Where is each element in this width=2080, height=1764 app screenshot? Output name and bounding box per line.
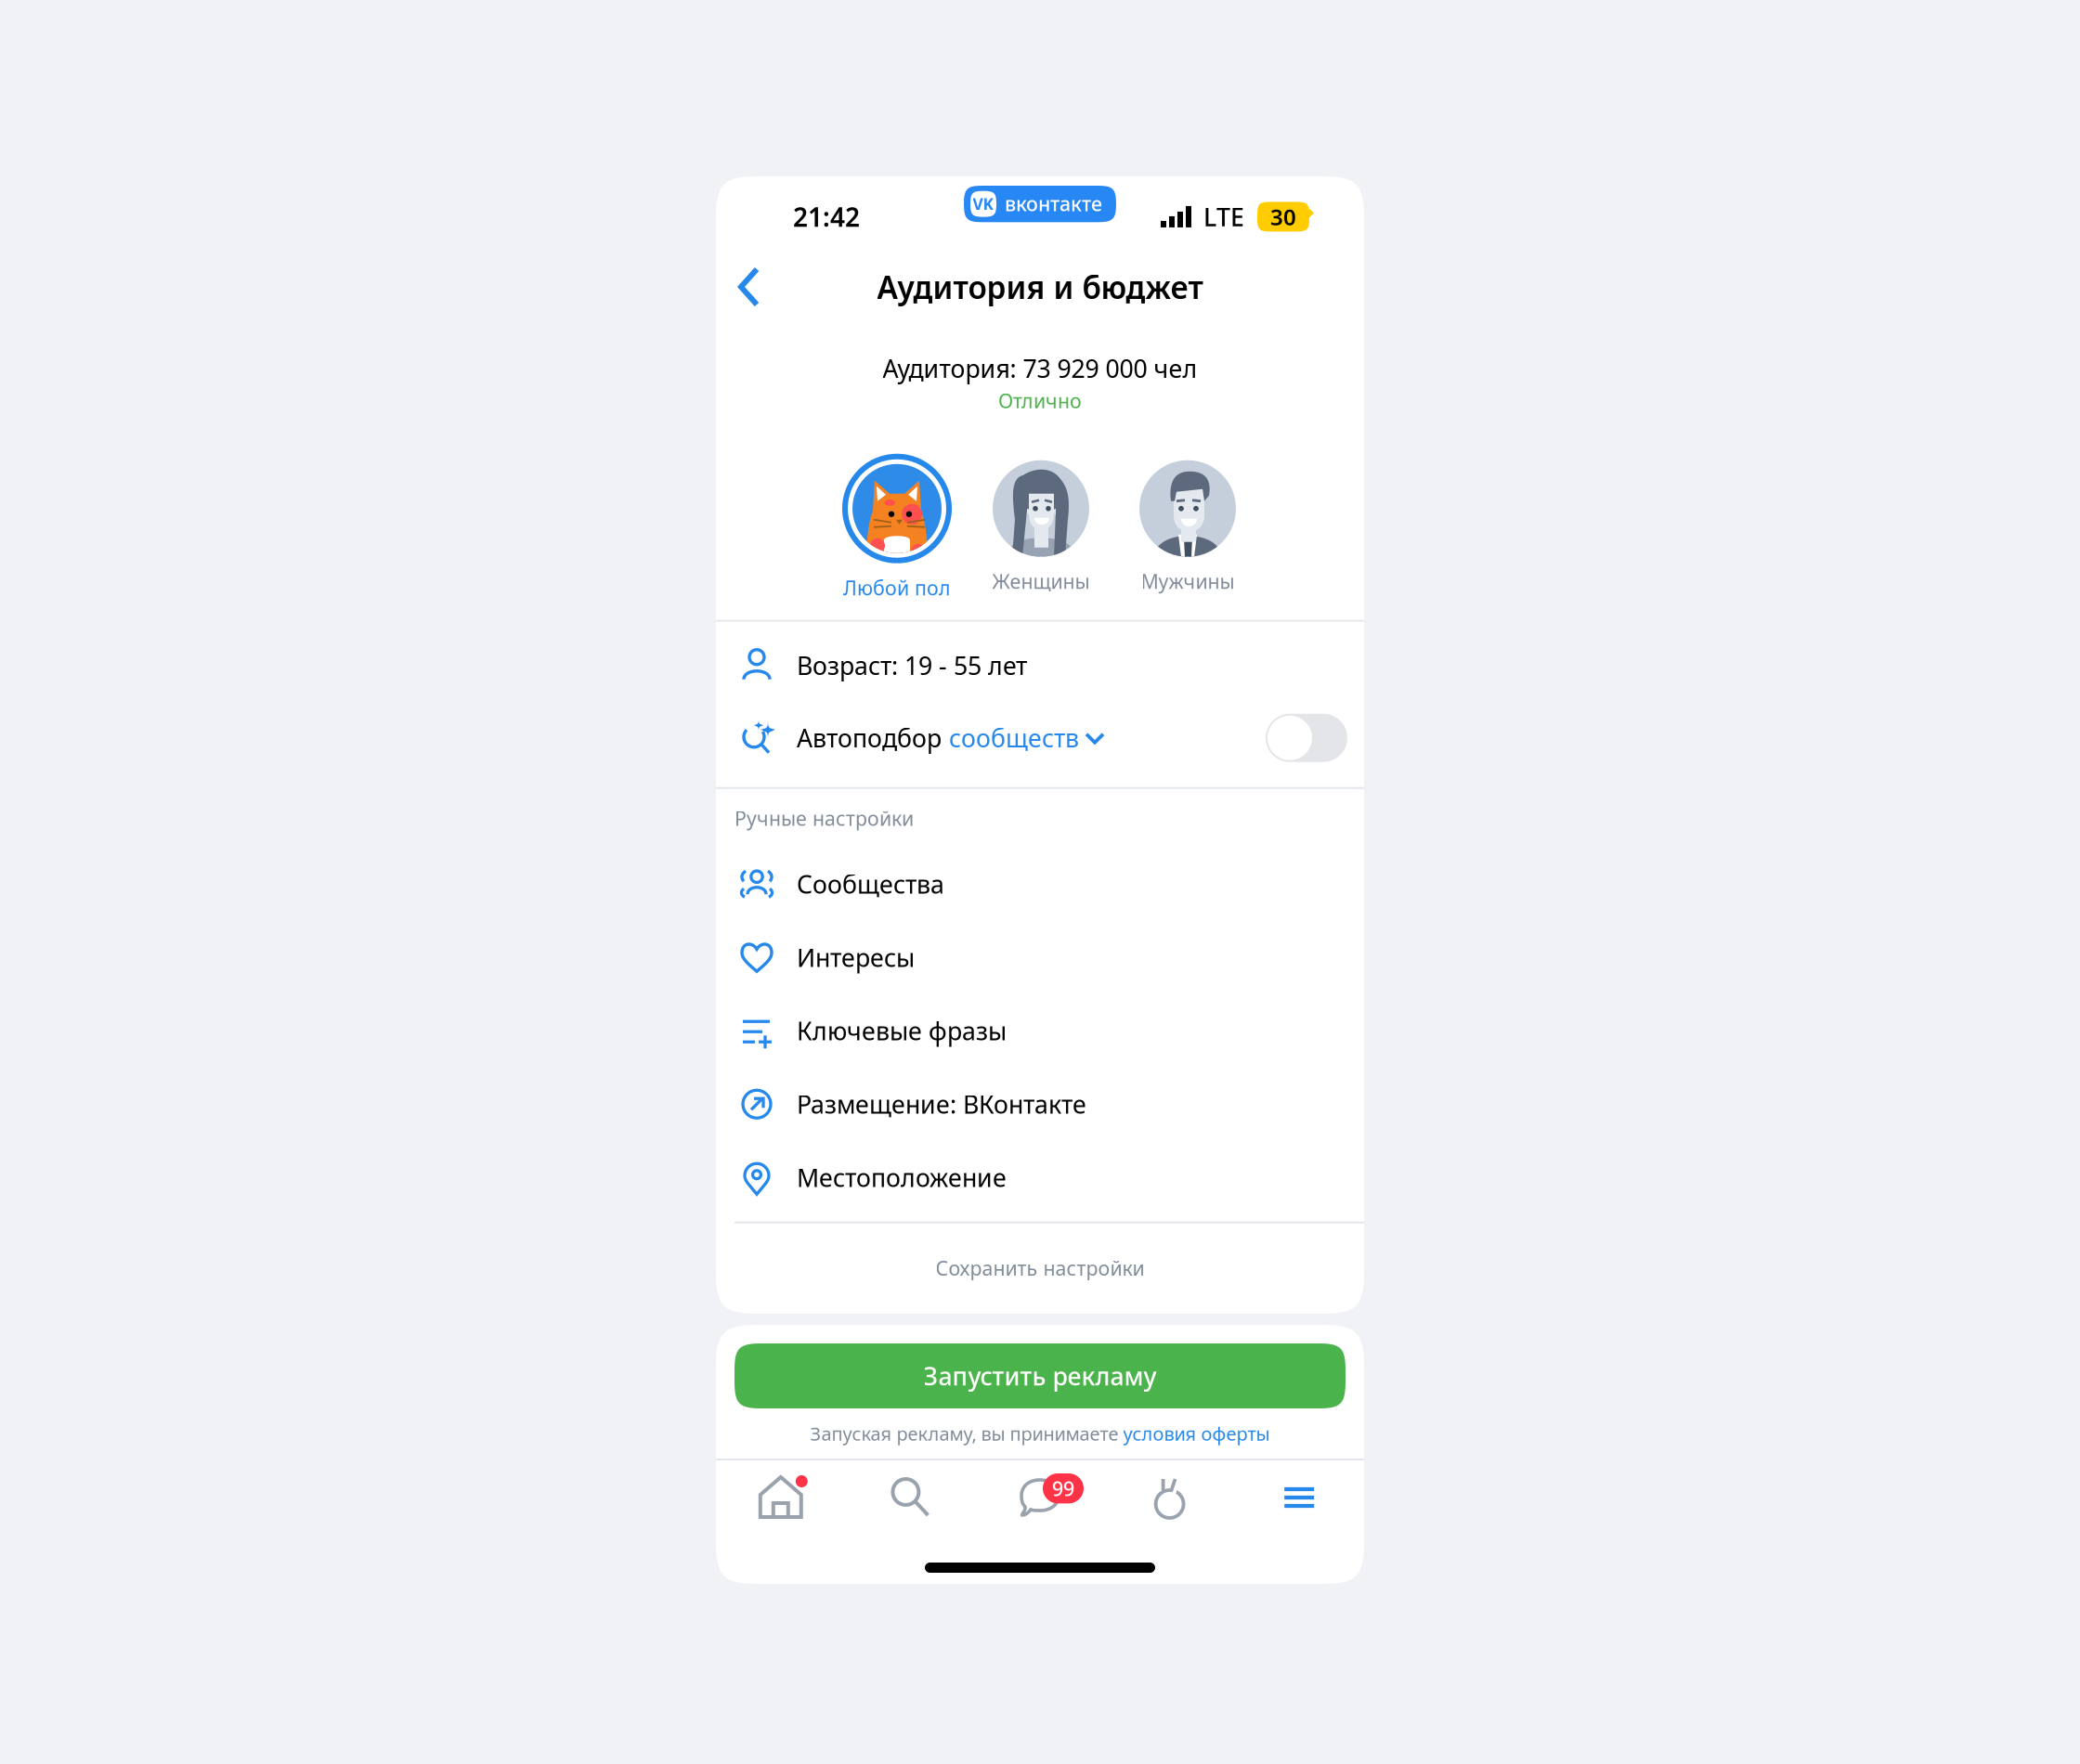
staticText: Женщины	[992, 568, 1090, 594]
button[interactable]: Сохранить настройки	[716, 1223, 1364, 1313]
button[interactable]: Любой пол	[818, 454, 976, 602]
staticText: 30	[1270, 202, 1296, 232]
staticText: Интересы	[797, 941, 915, 974]
staticText: Сохранить настройки	[936, 1255, 1144, 1281]
staticText: Отлично	[998, 388, 1082, 414]
button[interactable]: Клипы	[1105, 1460, 1234, 1535]
staticText: Размещение: ВКонтакте	[797, 1088, 1086, 1121]
button[interactable]: Главная	[716, 1460, 846, 1535]
button[interactable]: Интересы	[716, 921, 1364, 994]
staticText: Ключевые фразы	[797, 1014, 1007, 1047]
button[interactable]: Ключевые фразы	[716, 994, 1364, 1067]
button[interactable]: Сообщества	[716, 847, 1364, 921]
staticText: 99	[1052, 1475, 1074, 1502]
staticText: Сообщества	[797, 868, 944, 900]
staticText: Ручные настройки	[734, 805, 914, 831]
button[interactable]: Назад	[720, 258, 777, 316]
staticText: Аудитория: 73 929 000 чел	[883, 352, 1197, 385]
button[interactable]: Сообщения	[975, 1460, 1105, 1535]
staticText: вконтакте	[1005, 190, 1102, 217]
staticText: Аудитория и бюджет	[877, 266, 1203, 307]
staticText: сообществ	[949, 721, 1079, 754]
staticText: Автоподбор	[797, 721, 942, 754]
button[interactable]: Возраст: 19 - 55 лет	[716, 629, 1364, 702]
staticText: Возраст: 19 - 55 лет	[797, 649, 1027, 682]
staticText: LTE	[1203, 200, 1244, 233]
button[interactable]: Поиск	[846, 1460, 975, 1535]
staticText: условия оферты	[1123, 1421, 1270, 1446]
staticText: Запуская рекламу, вы принимаете	[810, 1421, 1123, 1446]
staticText: Запустить рекламу	[923, 1359, 1157, 1392]
staticText: Мужчины	[1141, 568, 1235, 594]
button[interactable]: Женщины	[976, 454, 1106, 602]
staticText: VK	[973, 193, 994, 215]
button[interactable]: Размещение: ВКонтакте	[716, 1067, 1364, 1141]
staticText: Местоположение	[797, 1161, 1007, 1194]
button[interactable]: условия оферты	[1123, 1421, 1270, 1446]
button[interactable]: Меню	[1234, 1460, 1364, 1535]
button[interactable]: Мужчины	[1106, 454, 1269, 602]
button[interactable]: Местоположение	[716, 1141, 1364, 1214]
staticText: Любой пол	[843, 574, 951, 601]
button[interactable]: Запустить рекламу	[734, 1343, 1345, 1408]
staticText: 21:42	[793, 199, 860, 234]
button[interactable]: Автоподбор	[716, 702, 1364, 774]
